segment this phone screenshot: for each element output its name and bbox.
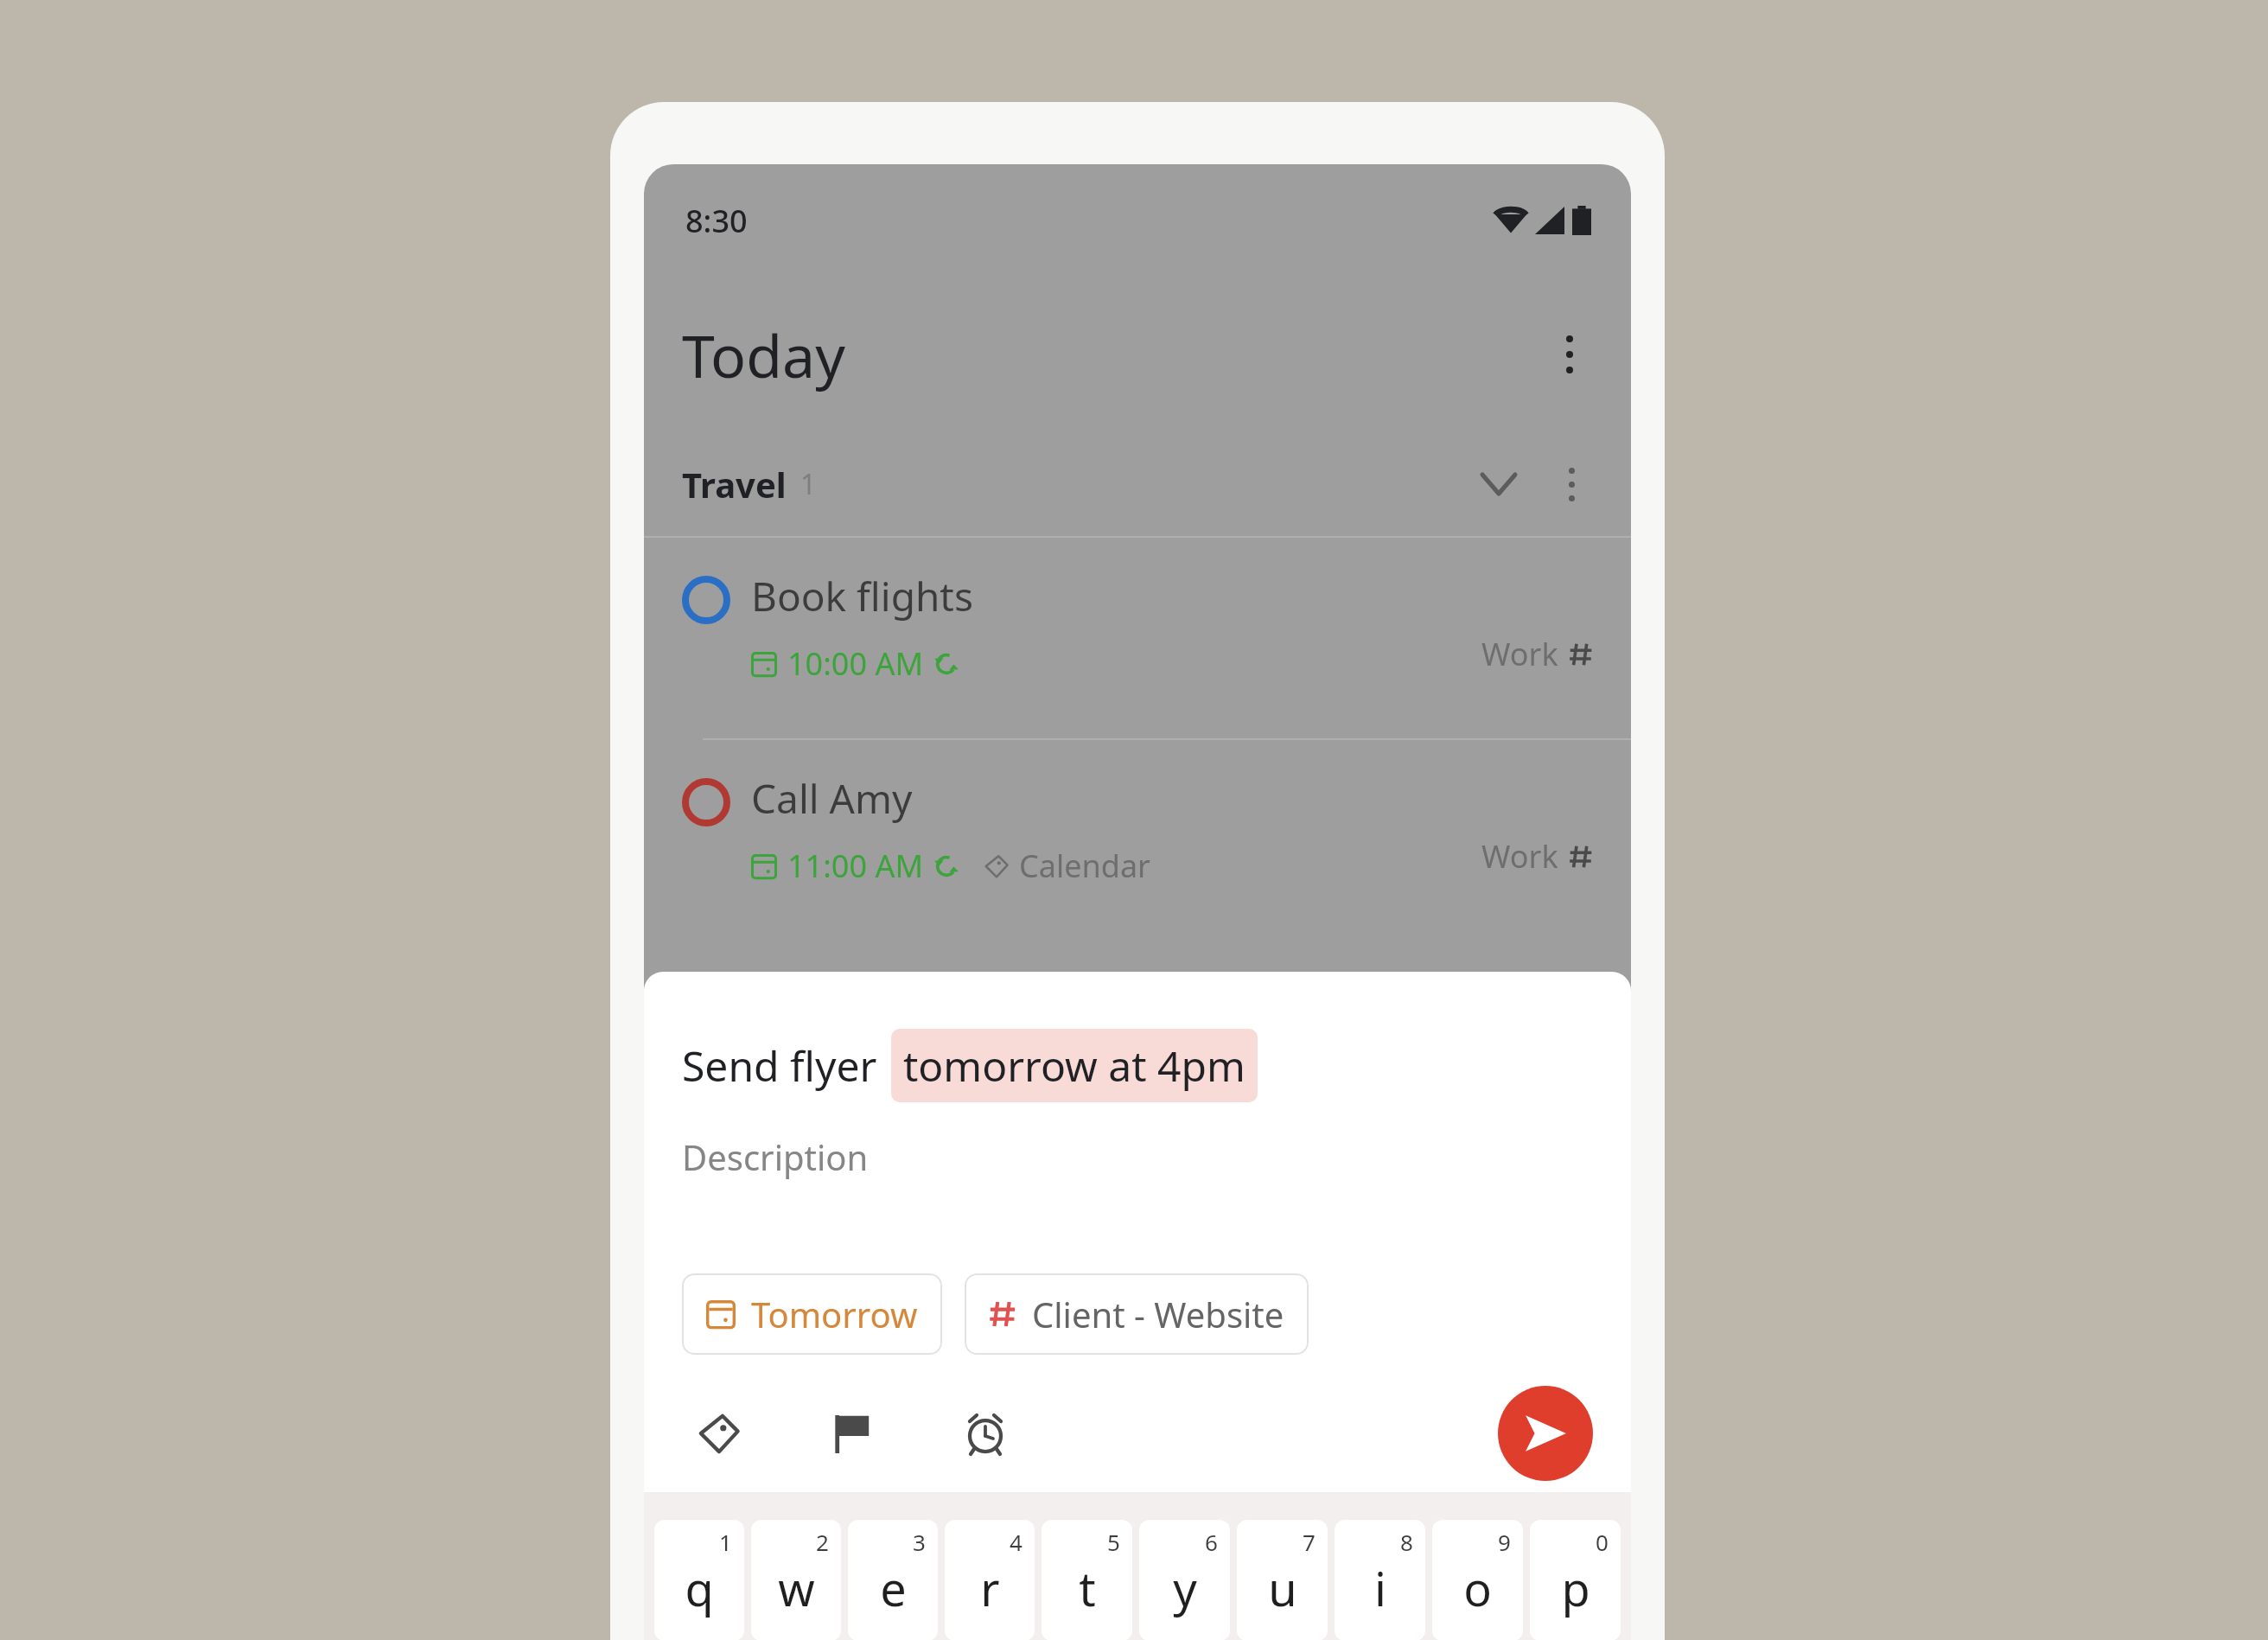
button[interactable]: 8: [1335, 1520, 1425, 1640]
button[interactable]: More options: [1536, 321, 1603, 388]
button[interactable]: Set reminder: [948, 1396, 1023, 1471]
staticText: i: [1374, 1556, 1386, 1620]
button[interactable]: 1: [654, 1520, 744, 1640]
button[interactable]: 2: [751, 1520, 841, 1640]
button[interactable]: Book flights: [644, 538, 1631, 738]
staticText: Calendar: [1019, 845, 1150, 887]
staticText: 3: [913, 1527, 926, 1557]
staticText: 8: [1400, 1527, 1413, 1557]
staticText: w: [778, 1556, 815, 1620]
button[interactable]: Tomorrow: [682, 1273, 942, 1355]
button[interactable]: 4: [945, 1520, 1035, 1640]
staticText: t: [1079, 1556, 1096, 1620]
button[interactable]: Travel: [644, 432, 1631, 536]
staticText: Today: [682, 315, 845, 395]
staticText: 11:00 AM: [787, 845, 924, 887]
staticText: o: [1463, 1556, 1492, 1620]
staticText: Send flyer: [682, 1037, 877, 1094]
staticText: e: [880, 1556, 907, 1620]
staticText: Tomorrow: [751, 1291, 918, 1337]
button[interactable]: Collapse section: [1467, 452, 1531, 516]
staticText: 4: [1010, 1527, 1023, 1557]
button[interactable]: Add label: [682, 1396, 756, 1471]
staticText: Travel: [682, 461, 787, 507]
staticText: Work: [1481, 633, 1558, 675]
staticText: Work: [1481, 835, 1558, 877]
staticText: Client - Website: [1032, 1291, 1284, 1337]
staticText: Description: [682, 1133, 869, 1180]
staticText: 1: [800, 465, 817, 503]
button[interactable]: Today: [644, 277, 1631, 432]
staticText: p: [1561, 1556, 1590, 1620]
staticText: 9: [1498, 1527, 1511, 1557]
button[interactable]: 0: [1530, 1520, 1621, 1640]
staticText: 0: [1596, 1527, 1609, 1557]
button[interactable]: 5: [1042, 1520, 1132, 1640]
staticText: 7: [1303, 1527, 1316, 1557]
button[interactable]: 3: [848, 1520, 938, 1640]
staticText: tomorrow at 4pm: [903, 1037, 1245, 1094]
button[interactable]: Set priority: [815, 1396, 889, 1471]
staticText: Call Amy: [751, 771, 913, 826]
staticText: Book flights: [751, 569, 974, 623]
staticText: 5: [1107, 1527, 1120, 1557]
button[interactable]: Call Amy: [644, 740, 1631, 941]
button[interactable]: 9: [1432, 1520, 1523, 1640]
staticText: 1: [719, 1527, 732, 1557]
staticText: 8:30: [685, 200, 748, 242]
button[interactable]: Client - Website: [965, 1273, 1309, 1355]
staticText: 2: [816, 1527, 829, 1557]
staticText: r: [980, 1556, 1000, 1620]
staticText: 10:00 AM: [787, 642, 924, 685]
button[interactable]: 6: [1139, 1520, 1230, 1640]
staticText: 6: [1205, 1527, 1218, 1557]
staticText: q: [685, 1556, 714, 1620]
button[interactable]: 7: [1237, 1520, 1328, 1640]
button[interactable]: Section options: [1539, 452, 1603, 516]
staticText: u: [1268, 1556, 1297, 1620]
button[interactable]: Send task: [1498, 1386, 1593, 1481]
staticText: y: [1173, 1556, 1197, 1620]
